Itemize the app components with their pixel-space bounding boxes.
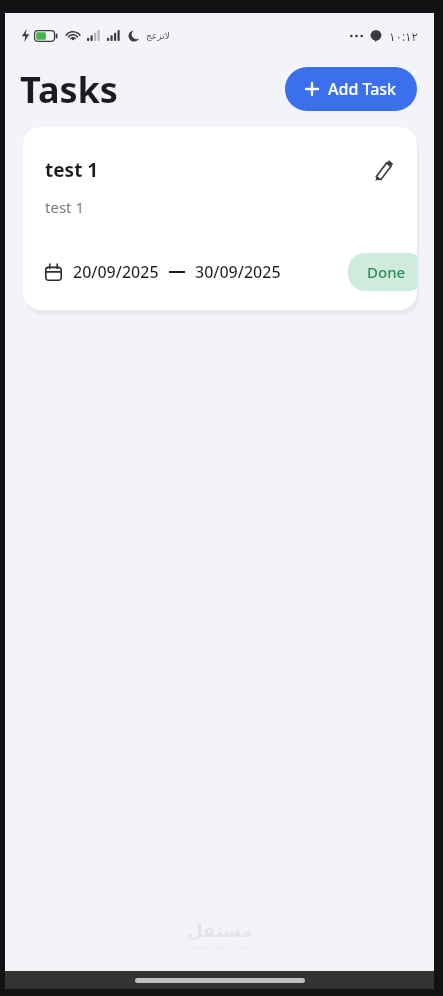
staticText: 30/09/2025 [195, 261, 281, 283]
staticText: Add Task [328, 78, 397, 100]
staticText: Done [367, 262, 406, 282]
staticText: ١٠:١٢ [389, 28, 418, 44]
button[interactable]: Add Task [285, 67, 417, 111]
staticText: 20/09/2025 [73, 261, 159, 283]
staticText: لاتزعج [146, 31, 170, 41]
staticText: test 1 [45, 197, 84, 217]
staticText: Tasks [20, 65, 118, 114]
button[interactable]: Edit task [366, 153, 400, 187]
staticText: test 1 [45, 157, 99, 183]
staticText: مستقل [187, 920, 253, 941]
button[interactable]: Done [348, 253, 417, 291]
button[interactable]: test 1 [23, 127, 417, 310]
